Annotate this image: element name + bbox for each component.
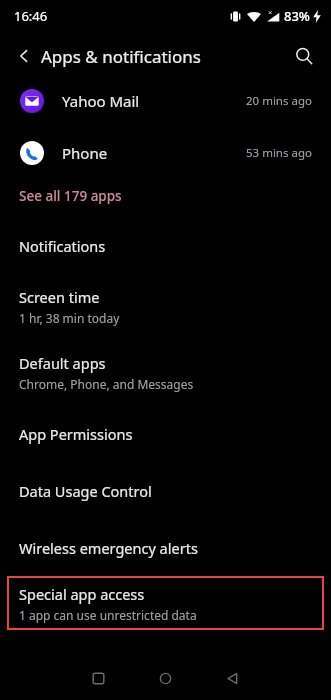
button[interactable]: Back (216, 662, 249, 695)
staticText: 20 mins ago (246, 93, 312, 109)
button[interactable]: App Permissions (0, 405, 331, 462)
button[interactable]: Wireless emergency alerts (0, 519, 331, 576)
button[interactable]: Phone (0, 133, 331, 173)
staticText: Phone (62, 143, 108, 163)
staticText: Notifications (19, 236, 106, 256)
button[interactable]: Recents (82, 662, 115, 695)
staticText: 83% (284, 7, 310, 25)
button[interactable]: Special app access (7, 576, 324, 630)
button[interactable]: Screen time (0, 273, 331, 339)
staticText: Special app access (19, 584, 145, 604)
staticText: Yahoo Mail (62, 91, 140, 111)
staticText: See all 179 apps (19, 187, 122, 205)
staticText: 16:46 (14, 7, 48, 25)
staticText: Apps & notifications (41, 45, 201, 68)
button[interactable]: Home (149, 662, 182, 695)
staticText: Screen time (19, 287, 100, 307)
staticText: Data Usage Control (19, 481, 152, 501)
staticText: Wireless emergency alerts (19, 538, 198, 558)
staticText: Default apps (19, 353, 106, 373)
button[interactable]: Default apps (0, 339, 331, 405)
staticText: 1 app can use unrestricted data (19, 607, 197, 623)
button[interactable]: Notifications (0, 219, 331, 273)
button[interactable]: Search (287, 39, 321, 73)
staticText: App Permissions (19, 424, 133, 444)
button[interactable]: Data Usage Control (0, 462, 331, 519)
staticText: 1 hr, 38 min today (19, 310, 120, 326)
staticText: Chrome, Phone, and Messages (19, 376, 194, 392)
button[interactable]: Back (8, 40, 40, 72)
button[interactable]: See all 179 apps (0, 173, 331, 219)
button[interactable]: Yahoo Mail (0, 81, 331, 121)
staticText: 53 mins ago (246, 145, 312, 161)
